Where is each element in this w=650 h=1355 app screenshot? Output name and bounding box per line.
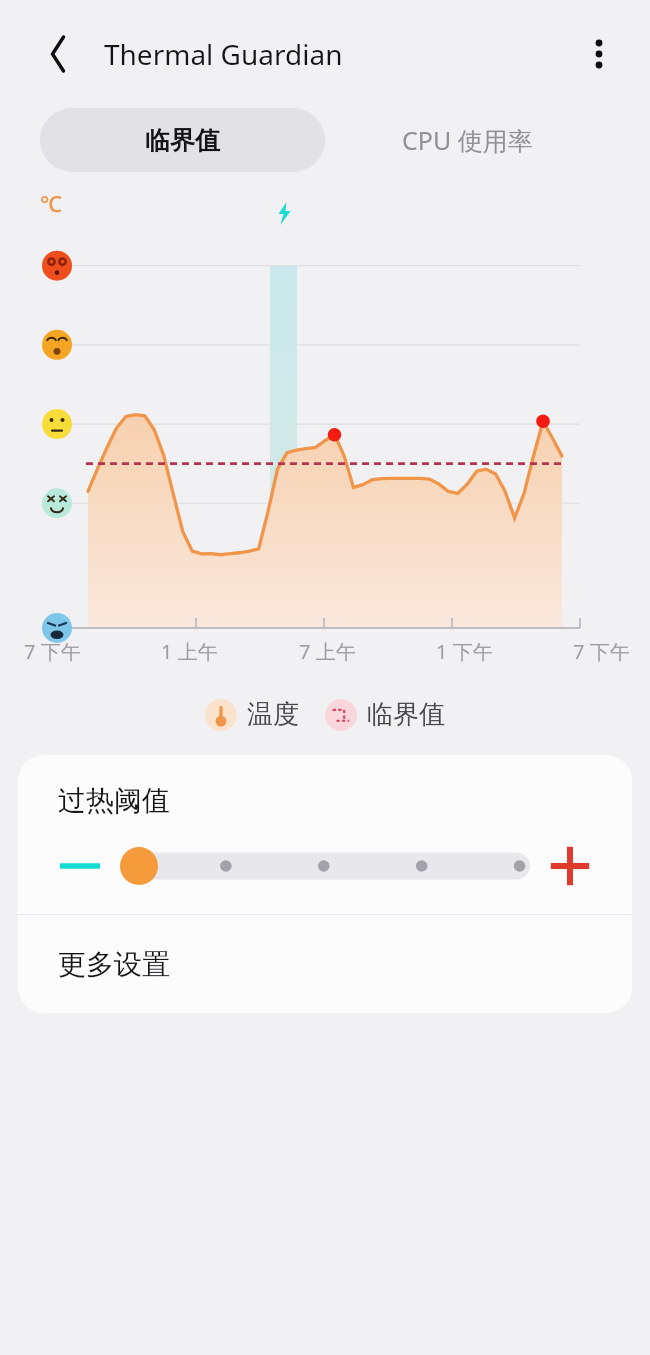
- staticText: 过热阈值: [58, 783, 170, 818]
- button[interactable]: Increase: [546, 842, 594, 890]
- button[interactable]: CPU 使用率: [325, 108, 610, 172]
- button[interactable]: 更多设置: [18, 915, 632, 1013]
- staticText: 临界值: [367, 698, 445, 731]
- staticText: 温度: [247, 698, 299, 731]
- staticText: Thermal Guardian: [104, 35, 343, 73]
- staticText: 1 上午: [161, 638, 218, 665]
- staticText: 7 上午: [299, 638, 356, 665]
- staticText: 更多设置: [58, 947, 170, 982]
- staticText: 7 下午: [24, 638, 81, 665]
- button[interactable]: 临界值: [40, 108, 325, 172]
- button[interactable]: Back: [32, 30, 80, 78]
- staticText: ℃: [40, 188, 62, 218]
- staticText: CPU 使用率: [402, 123, 533, 157]
- button[interactable]: More options: [574, 29, 624, 79]
- button[interactable]: Decrease: [56, 842, 104, 890]
- staticText: 临界值: [145, 125, 220, 156]
- button[interactable]: 过热阈值: [18, 755, 632, 914]
- staticText: 1 下午: [436, 638, 493, 665]
- staticText: 7 下午: [573, 638, 630, 665]
- button[interactable]: [120, 846, 530, 886]
